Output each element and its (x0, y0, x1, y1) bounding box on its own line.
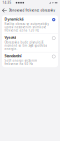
button[interactable]: Back (1, 6, 8, 15)
button[interactable]: Standardní (2, 52, 58, 67)
staticText: Dynamická (4, 17, 23, 21)
staticText: Šetří energii snížením frekvence na 60 H… (4, 59, 37, 66)
staticText: Kvalita obrazu se automaticky upraví nas… (4, 22, 48, 32)
staticText: Vysoká (4, 35, 16, 40)
button[interactable]: Vysoká (2, 34, 58, 52)
staticText: Standardní (4, 53, 21, 58)
staticText: Obnovovací frekvence obrazovky (9, 8, 55, 12)
staticText: 14:35 (3, 1, 12, 5)
button[interactable]: Dynamická (2, 15, 58, 33)
staticText: Obrazovka bude plynulejší, nicméně se tí… (4, 40, 47, 51)
